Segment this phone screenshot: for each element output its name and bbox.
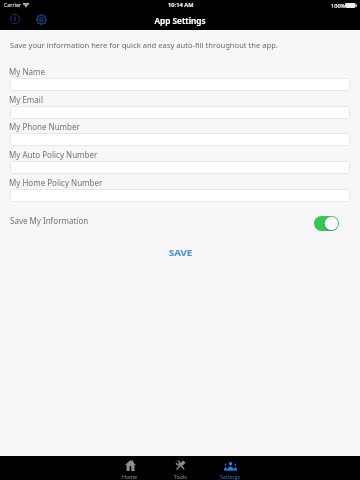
- staticText: App Settings: [0, 15, 360, 26]
- staticText: SAVE: [169, 246, 193, 259]
- button[interactable]: Settings: [205, 456, 255, 480]
- button[interactable]: [10, 106, 350, 119]
- staticText: Settings: [220, 473, 241, 480]
- staticText: My Home Policy Number: [9, 177, 103, 188]
- button[interactable]: [10, 161, 350, 174]
- staticText: My Auto Policy Number: [9, 149, 98, 160]
- staticText: Save your information here for quick and…: [10, 40, 278, 50]
- staticText: My Name: [9, 66, 45, 77]
- staticText: Home: [122, 473, 138, 480]
- staticText: 10:14 AM: [168, 1, 194, 9]
- button[interactable]: Tools: [155, 456, 205, 480]
- button[interactable]: SAVE: [161, 244, 201, 260]
- button[interactable]: Settings: [33, 11, 49, 27]
- staticText: 100%: [331, 2, 346, 10]
- button[interactable]: Info: [7, 11, 23, 27]
- staticText: Save My Information: [10, 215, 89, 226]
- staticText: Tools: [174, 473, 187, 480]
- staticText: Carrier: [4, 1, 22, 8]
- button[interactable]: [10, 189, 350, 202]
- staticText: My Email: [9, 94, 43, 105]
- button[interactable]: Save My Information: [314, 216, 339, 231]
- button[interactable]: [10, 133, 350, 146]
- staticText: My Phone Number: [9, 121, 80, 132]
- button[interactable]: Home: [105, 456, 155, 480]
- button[interactable]: [10, 78, 350, 91]
